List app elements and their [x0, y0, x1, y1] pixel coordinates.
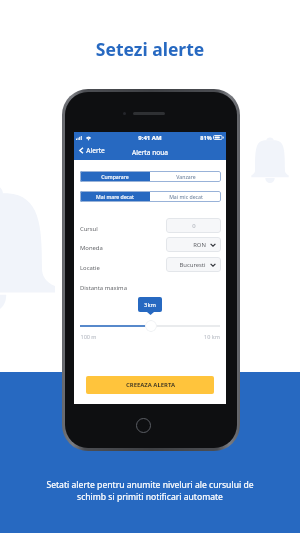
button[interactable]: Alerte [74, 144, 109, 157]
button[interactable]: RON [166, 237, 221, 252]
button[interactable]: Mai mare decat [80, 191, 150, 202]
staticText: Distanta maxima [80, 284, 127, 292]
staticText: Bucuresti [179, 261, 206, 269]
button[interactable]: Cumparare [80, 171, 150, 182]
staticText: RON [193, 241, 206, 249]
button[interactable]: Selected distance 3km [138, 297, 162, 312]
staticText: 81% [200, 134, 212, 141]
staticText: Cursul [80, 225, 98, 233]
button[interactable]: Vanzare [150, 171, 221, 182]
staticText: Setezi alerte [0, 37, 300, 61]
staticText: 3km [144, 301, 156, 309]
button[interactable]: CREEAZA ALERTA [86, 376, 214, 394]
button[interactable]: Mai mic decat [150, 191, 221, 202]
staticText: Mai mic decat [169, 193, 203, 200]
staticText: 100 m [80, 333, 97, 340]
staticText: Setati alerte pentru anumite niveluri al… [0, 479, 300, 503]
staticText: Cumparare [101, 173, 129, 180]
staticText: Mai mare decat [96, 193, 134, 200]
button[interactable]: Distance slider [145, 320, 157, 332]
staticText: Alerte [86, 146, 105, 155]
staticText: CREEAZA ALERTA [126, 381, 175, 389]
staticText: Locatie [80, 264, 100, 272]
staticText: Vanzare [176, 173, 196, 180]
staticText: 9:41 AM [138, 134, 162, 142]
staticText: Moneda [80, 244, 103, 252]
button[interactable]: Bucuresti [166, 257, 221, 272]
staticText: 10 km [204, 333, 220, 340]
button[interactable]: Cursul input [166, 218, 221, 233]
staticText: Alerta noua [132, 148, 168, 157]
staticText: 0 [192, 222, 196, 230]
